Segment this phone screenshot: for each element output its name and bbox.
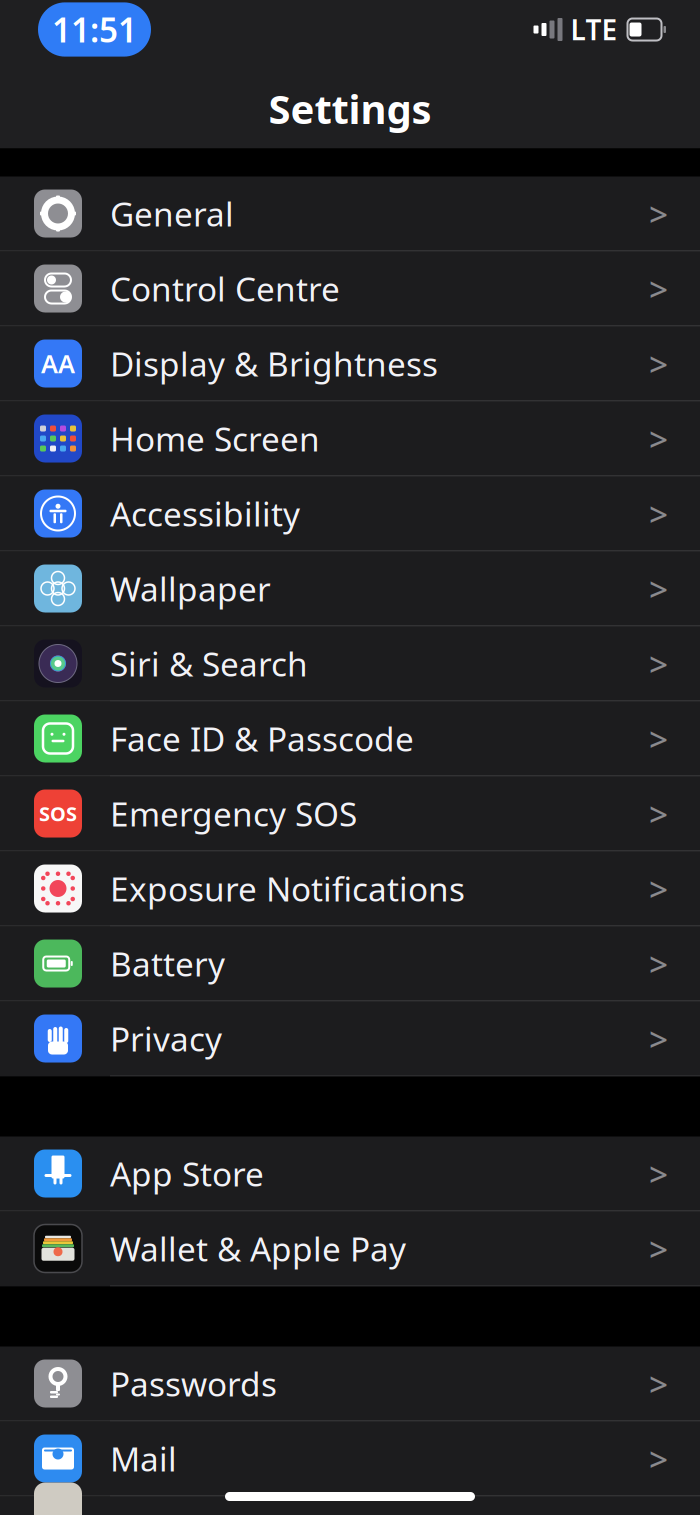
button[interactable]: SOS (0, 776, 700, 851)
staticText: Home Screen (110, 416, 320, 461)
staticText: > (649, 266, 668, 311)
staticText: > (649, 941, 668, 986)
staticText: General (110, 191, 234, 236)
staticText: 11:51 (52, 7, 137, 52)
button[interactable]: Home Screen (0, 401, 700, 476)
button[interactable]: AA (0, 326, 700, 401)
staticText: Passwords (110, 1361, 277, 1406)
staticText: SOS (39, 800, 77, 827)
staticText: Siri & Search (110, 641, 308, 686)
staticText: > (649, 1151, 668, 1196)
staticText: > (649, 1361, 668, 1406)
staticText: > (649, 791, 668, 836)
staticText: > (649, 1016, 668, 1061)
staticText: > (649, 641, 668, 686)
staticText: > (649, 866, 668, 911)
button[interactable]: General (0, 176, 700, 251)
button[interactable]: Control Centre (0, 251, 700, 326)
button[interactable]: Accessibility (0, 476, 700, 551)
staticText: > (649, 416, 668, 461)
staticText: Display & Brightness (110, 341, 438, 386)
button[interactable]: Wallet & Apple Pay (0, 1211, 700, 1286)
button[interactable]: Siri & Search (0, 626, 700, 701)
staticText: Wallet & Apple Pay (110, 1226, 406, 1271)
button[interactable]: Privacy (0, 1001, 700, 1076)
staticText: Wallpaper (110, 566, 271, 611)
staticText: Emergency SOS (110, 791, 357, 836)
staticText: > (649, 341, 668, 386)
staticText: > (649, 491, 668, 536)
staticText: > (649, 566, 668, 611)
staticText: > (649, 1436, 668, 1481)
staticText: Control Centre (110, 266, 340, 311)
staticText: > (649, 716, 668, 761)
button[interactable]: Passwords (0, 1346, 700, 1421)
staticText: App Store (110, 1151, 264, 1196)
staticText: Face ID & Passcode (110, 716, 414, 761)
staticText: Exposure Notifications (110, 866, 465, 911)
staticText: > (649, 1226, 668, 1271)
staticText: > (649, 191, 668, 236)
staticText: Privacy (110, 1016, 222, 1061)
button[interactable]: Exposure Notifications (0, 851, 700, 926)
button[interactable]: Mail (0, 1421, 700, 1496)
button[interactable]: Battery (0, 926, 700, 1001)
staticText: LTE (570, 11, 617, 48)
staticText: Mail (110, 1436, 177, 1481)
staticText: AA (41, 347, 75, 380)
staticText: Settings (268, 82, 431, 135)
button[interactable]: Wallpaper (0, 551, 700, 626)
staticText: Battery (110, 941, 225, 986)
button[interactable]: Face ID & Passcode (0, 701, 700, 776)
button[interactable]: App Store (0, 1136, 700, 1211)
staticText: Accessibility (110, 491, 300, 536)
